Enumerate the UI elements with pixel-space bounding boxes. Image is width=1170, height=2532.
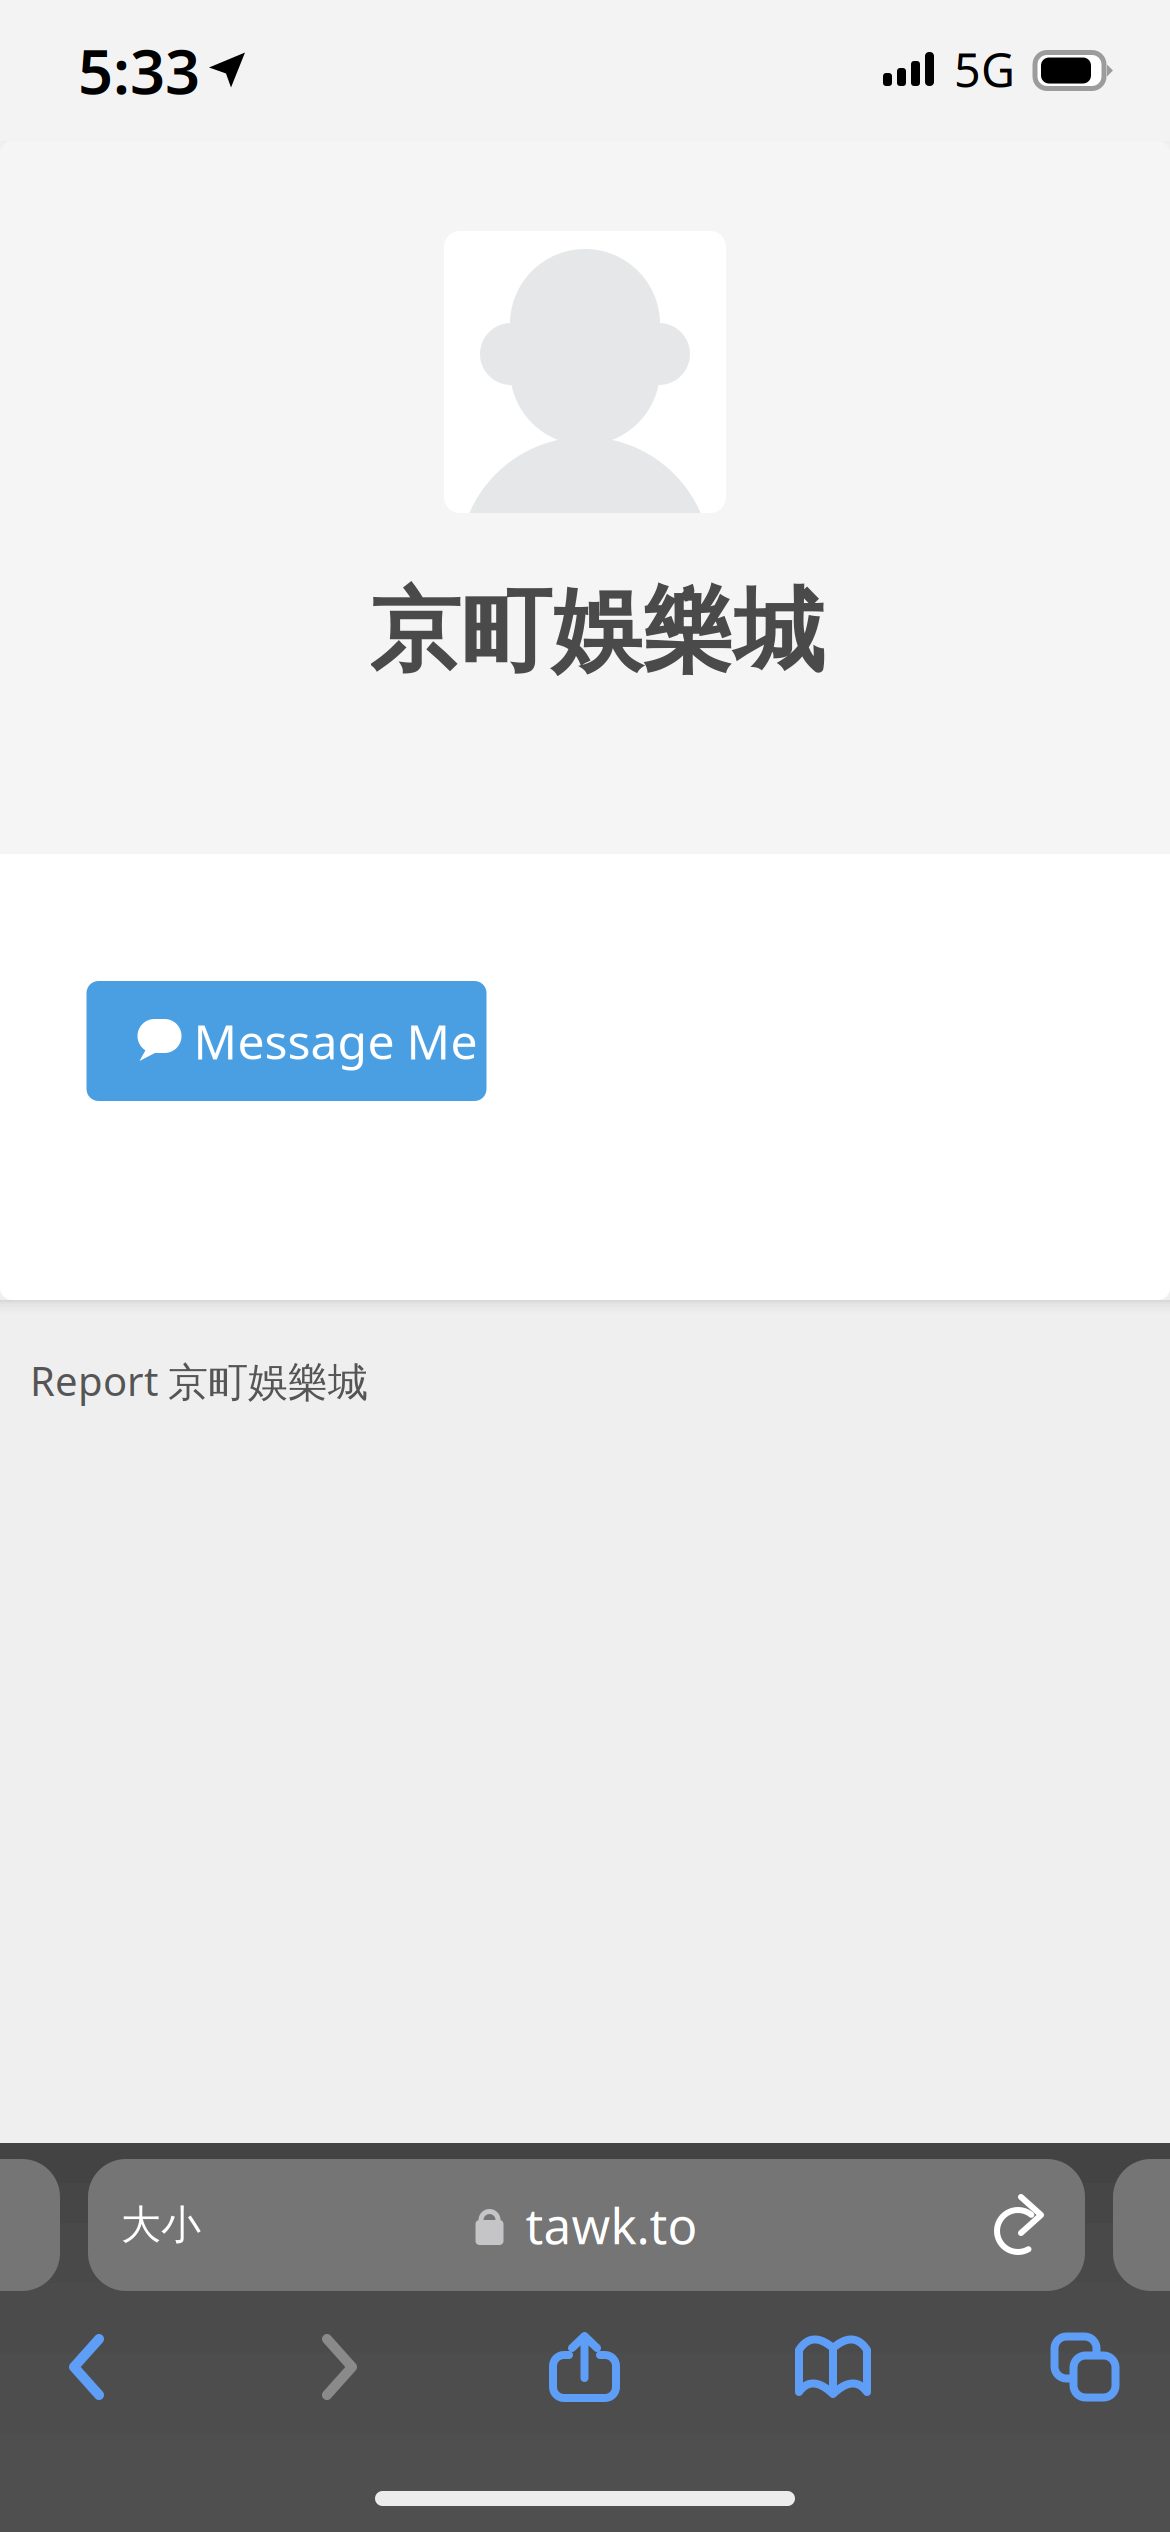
button[interactable]: Share — [504, 2312, 666, 2422]
button[interactable]: Message Me — [90, 981, 490, 1101]
staticText: 5G — [954, 38, 1015, 100]
button[interactable]: Tabs — [1000, 2312, 1170, 2422]
staticText: 5:33 — [78, 30, 200, 111]
button[interactable]: Bookmarks — [666, 2312, 1000, 2422]
button[interactable]: Back — [0, 2312, 174, 2422]
staticText: Report 京町娛樂城 — [30, 1354, 368, 1407]
button[interactable]: Forward — [174, 2312, 504, 2422]
staticText: 京町娛樂城 — [369, 576, 824, 687]
button[interactable]: 大小 — [88, 2159, 1085, 2291]
staticText: tawk.to — [525, 2192, 697, 2258]
staticText: 大小 — [121, 2200, 201, 2249]
staticText: Message Me — [193, 1009, 477, 1073]
